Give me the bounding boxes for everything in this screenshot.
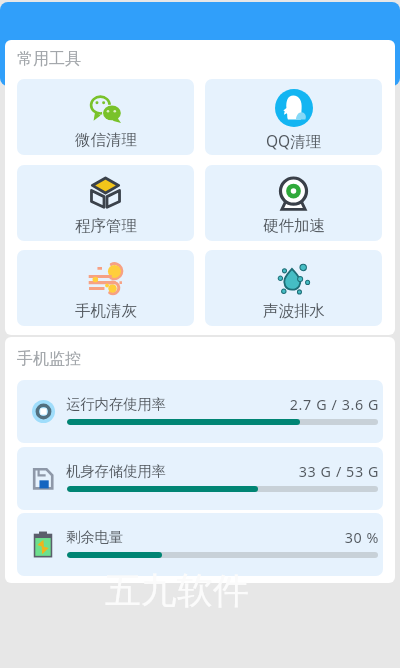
button[interactable]: Memory usage [17,380,383,443]
other: Sound water eject [277,262,311,296]
button[interactable]: Hardware acceleration [205,165,382,241]
button[interactable]: App manager [17,165,194,241]
button[interactable]: WeChat clean [17,79,194,155]
staticText: 声波排水 [263,301,325,321]
other: QQ clean [275,89,313,127]
staticText: 运行内存使用率 [66,395,167,413]
button[interactable]: Battery level [17,513,383,576]
staticText: 手机清灰 [75,301,137,321]
staticText: 机身存储使用率 [66,462,167,480]
staticText: 硬件加速 [263,216,325,236]
staticText: 手机监控 [17,349,81,369]
button[interactable]: Dust cleaning [17,250,194,326]
staticText: QQ清理 [266,130,322,151]
other: WeChat clean [90,95,121,123]
other: Hardware acceleration [279,178,308,211]
other: Dust cleaning [88,262,123,294]
staticText: 2.7 G / 3.6 G [197,395,379,414]
staticText: 常用工具 [17,49,81,69]
staticText: 剩余电量 [66,528,124,546]
staticText: 五九软件 [105,568,249,613]
staticText: 33 G / 53 G [197,462,379,481]
other: App manager [89,176,122,209]
button[interactable]: QQ clean [205,79,382,155]
staticText: 程序管理 [75,216,137,236]
staticText: 微信清理 [75,130,137,150]
button[interactable]: Sound water eject [205,250,382,326]
staticText: 30 % [197,528,379,547]
button[interactable]: Storage usage [17,447,383,510]
